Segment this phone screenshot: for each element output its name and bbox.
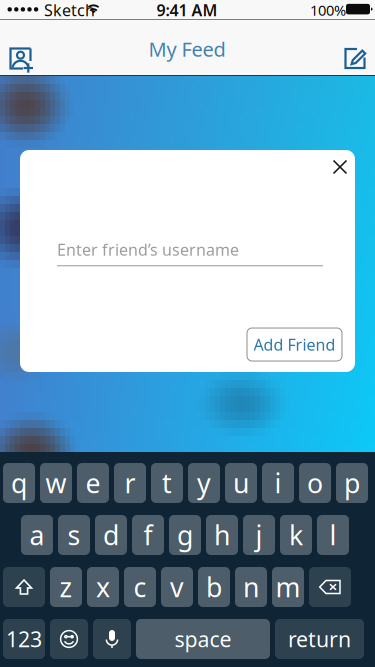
button[interactable]: i [262,463,294,503]
staticText: b [206,569,222,605]
staticText: e [85,465,100,501]
staticText: n [243,569,259,605]
button[interactable]: w [40,463,72,503]
button[interactable]: return [275,619,364,659]
staticText: Add Friend [253,334,335,355]
button[interactable]: g [169,515,201,555]
button[interactable]: q [3,463,35,503]
staticText: space [174,625,231,653]
button[interactable]: Compose [334,37,375,81]
button[interactable]: a [21,515,53,555]
button[interactable]: My Feed [127,34,247,64]
staticText: u [233,465,249,501]
staticText: l [329,517,336,553]
staticText: v [170,569,184,605]
button[interactable]: v [161,567,193,607]
staticText: f [143,517,152,553]
button[interactable]: u [225,463,257,503]
staticText: q [11,465,27,501]
staticText: return [288,625,351,653]
button[interactable]: e [77,463,109,503]
button[interactable]: x [87,567,119,607]
staticText: r [124,465,135,501]
button[interactable]: 123 [3,619,45,659]
button[interactable]: Add Friend [247,328,342,361]
button[interactable]: f [132,515,164,555]
button[interactable]: l [317,515,349,555]
staticText: a [29,517,44,553]
staticText: i [274,465,281,501]
staticText: s [67,517,80,553]
button[interactable]: j [243,515,275,555]
button[interactable]: m [272,567,304,607]
staticText: 100% [310,0,346,20]
staticText: c [133,569,146,605]
button[interactable]: t [151,463,183,503]
button[interactable]: Close [323,150,357,184]
button[interactable]: space [136,619,270,659]
button[interactable]: n [235,567,267,607]
button[interactable]: p [336,463,368,503]
staticText: m [275,569,300,605]
staticText: z [59,569,72,605]
button[interactable]: c [124,567,156,607]
button[interactable] [93,619,131,659]
staticText: j [255,517,262,553]
staticText: 9:41 AM [156,0,217,21]
staticText: k [289,517,303,553]
button[interactable] [50,619,88,659]
button[interactable]: r [114,463,146,503]
button[interactable]: b [198,567,230,607]
staticText: t [162,465,172,501]
staticText: Sketch [44,0,95,21]
staticText: Enter friend’s username [57,239,239,260]
staticText: p [344,465,360,501]
button[interactable]: Add Friend [0,38,44,82]
staticText: w [45,465,66,501]
staticText: o [307,465,323,501]
button[interactable] [3,567,45,607]
button[interactable]: o [299,463,331,503]
staticText: y [197,465,211,501]
staticText: h [214,517,230,553]
button[interactable]: d [95,515,127,555]
staticText: g [177,517,193,553]
staticText: 123 [6,625,42,653]
button[interactable]: k [280,515,312,555]
button[interactable]: s [58,515,90,555]
button[interactable]: z [50,567,82,607]
button[interactable] [309,567,351,607]
button[interactable]: h [206,515,238,555]
staticText: My Feed [148,36,225,62]
button[interactable]: y [188,463,220,503]
staticText: d [103,517,119,553]
staticText: x [96,569,110,605]
